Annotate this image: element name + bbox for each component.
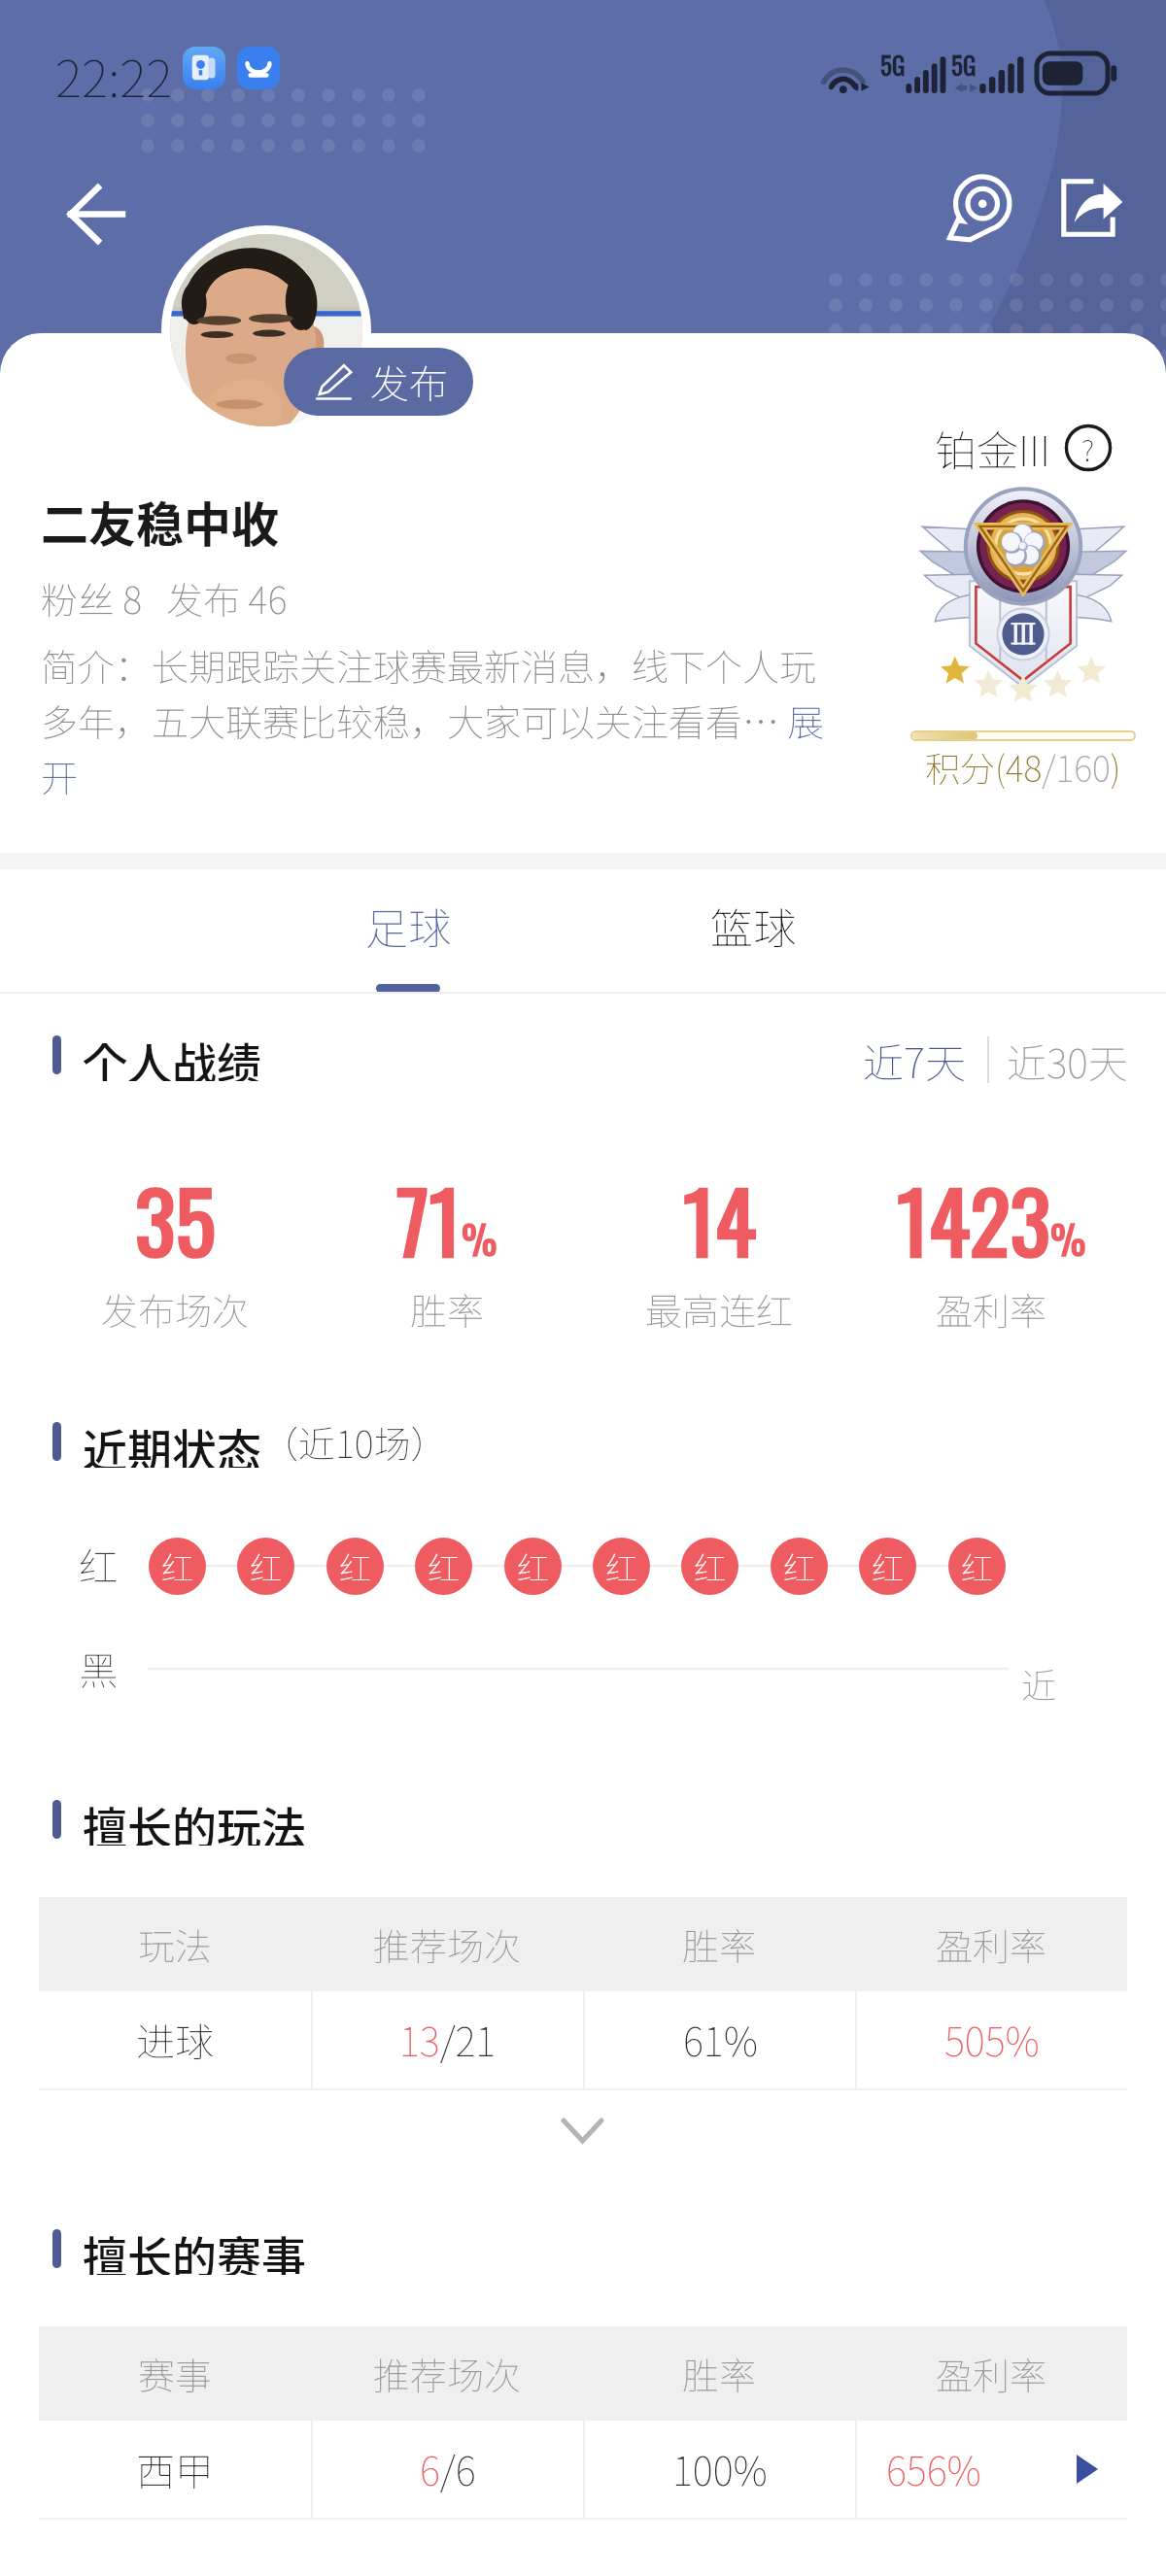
staticText: 61% — [683, 2012, 758, 2068]
button[interactable]: 近7天 — [855, 1023, 974, 1097]
staticText: % — [1050, 1208, 1086, 1268]
staticText: 赛事 — [138, 2347, 213, 2400]
staticText: 红 — [605, 1543, 637, 1590]
button[interactable]: 红 — [859, 1538, 916, 1595]
staticText: 红 — [161, 1543, 193, 1590]
staticText: 发布 — [370, 354, 448, 410]
button[interactable]: Back — [68, 186, 122, 242]
button[interactable]: 进球 — [39, 1991, 1127, 2088]
button[interactable]: Expand — [0, 2091, 1166, 2218]
button[interactable]: 红 — [415, 1538, 472, 1595]
button[interactable]: 篮球 — [636, 869, 870, 994]
staticText: 红 — [783, 1543, 815, 1590]
staticText: （近10场） — [261, 1415, 448, 1468]
button[interactable]: 红 — [326, 1538, 384, 1595]
staticText: 红 — [428, 1543, 460, 1590]
staticText: 擅长的赛事 — [83, 2222, 306, 2275]
staticText: 红 — [517, 1543, 549, 1590]
staticText: 粉丝 8 发布 46 — [41, 571, 288, 625]
staticText: 22:22 — [55, 39, 173, 112]
button[interactable]: 红 — [771, 1538, 828, 1595]
staticText: 656% — [886, 2441, 981, 2497]
staticText: 红 — [961, 1543, 993, 1590]
staticText: 505% — [944, 2012, 1040, 2068]
staticText: 盈利率 — [936, 1917, 1047, 1971]
staticText: 胜率 — [682, 1917, 757, 1971]
staticText: 近7天 — [863, 1031, 966, 1089]
staticText: 14 — [683, 1156, 756, 1281]
staticText: 西甲 — [136, 2441, 214, 2497]
staticText: 推荐场次 — [373, 2347, 522, 2400]
staticText: 红 — [694, 1543, 726, 1590]
button[interactable]: 红 — [237, 1538, 294, 1595]
staticText: 6/6 — [420, 2441, 476, 2497]
button[interactable]: 西甲 — [39, 2421, 1127, 2518]
staticText: 简介：长期跟踪关注球赛最新消息，线下个人玩多年，五大联赛比较稳，大家可以关注看看… — [41, 638, 838, 802]
staticText: 胜率 — [410, 1282, 485, 1336]
staticText: 玩法 — [138, 1917, 213, 1971]
staticText: 5G — [880, 47, 906, 83]
staticText: 发布场次 — [101, 1282, 250, 1336]
staticText: 71 — [396, 1156, 462, 1281]
staticText: 篮球 — [710, 895, 796, 957]
button[interactable]: Messages — [944, 173, 1014, 243]
staticText: 胜率 — [682, 2347, 757, 2400]
button[interactable]: 红 — [681, 1538, 738, 1595]
staticText: 100% — [672, 2441, 768, 2497]
staticText: 红 — [250, 1543, 282, 1590]
staticText: 红 — [872, 1543, 904, 1590]
staticText: 足球 — [365, 895, 451, 957]
button[interactable]: 红 — [593, 1538, 650, 1595]
staticText: 二友稳中收 — [41, 487, 280, 556]
staticText: 擅长的玩法 — [83, 1793, 306, 1846]
button[interactable]: 红 — [149, 1538, 206, 1595]
staticText: 盈利率 — [936, 2347, 1047, 2400]
staticText: 个人战绩 — [83, 1029, 261, 1081]
button[interactable]: 红 — [504, 1538, 562, 1595]
staticText: 积分(48/160) — [925, 741, 1121, 792]
staticText: 近 — [1021, 1658, 1057, 1709]
button[interactable]: 红 — [948, 1538, 1006, 1595]
staticText: 盈利率 — [936, 1282, 1047, 1336]
button[interactable]: 铂金III — [935, 418, 1112, 478]
staticText: 红 — [79, 1537, 118, 1593]
staticText: 黑 — [79, 1641, 118, 1697]
staticText: 推荐场次 — [373, 1917, 522, 1971]
staticText: 35 — [135, 1156, 216, 1281]
staticText: 13/21 — [399, 2012, 497, 2068]
button[interactable]: 发布 — [284, 348, 473, 416]
staticText: 红 — [339, 1543, 371, 1590]
staticText: 铂金III — [935, 418, 1051, 478]
button[interactable]: 足球 — [291, 869, 525, 994]
staticText: % — [462, 1208, 497, 1268]
staticText: 1423 — [897, 1156, 1050, 1281]
staticText: ? — [1081, 427, 1095, 469]
staticText: 最高连红 — [645, 1282, 794, 1336]
staticText: 5G — [951, 47, 977, 83]
button[interactable]: Share — [1057, 175, 1123, 241]
staticText: 进球 — [136, 2012, 214, 2068]
staticText: 近30天 — [1007, 1032, 1128, 1089]
button[interactable]: 近30天 — [999, 1024, 1136, 1097]
staticText: 近期状态 — [83, 1415, 261, 1468]
